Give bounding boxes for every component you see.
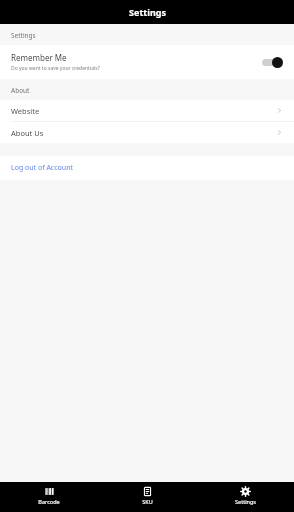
- staticText: Website: [11, 106, 276, 116]
- button[interactable]: About Us: [0, 122, 294, 143]
- button[interactable]: Barcode: [0, 482, 98, 512]
- staticText: About Us: [11, 128, 276, 138]
- staticText: Settings: [11, 31, 36, 40]
- staticText: Settings: [235, 498, 256, 505]
- staticText: Barcode: [38, 498, 60, 505]
- staticText: Remember Me: [11, 52, 67, 63]
- button[interactable]: Settings: [196, 482, 294, 512]
- other: Barcode: [45, 487, 54, 496]
- other: Settings: [241, 487, 250, 496]
- staticText: Do you want to save your credentials?: [11, 65, 100, 72]
- other: SKU: [143, 487, 152, 496]
- button[interactable]: Remember Me toggle: [261, 56, 283, 68]
- staticText: Settings: [129, 6, 166, 18]
- staticText: SKU: [142, 498, 153, 505]
- button[interactable]: Log out of Account: [0, 156, 294, 180]
- button[interactable]: SKU: [98, 482, 196, 512]
- button[interactable]: Website: [0, 100, 294, 121]
- button[interactable]: Remember Me: [0, 45, 294, 79]
- staticText: Log out of Account: [11, 163, 74, 173]
- staticText: About: [11, 86, 30, 95]
